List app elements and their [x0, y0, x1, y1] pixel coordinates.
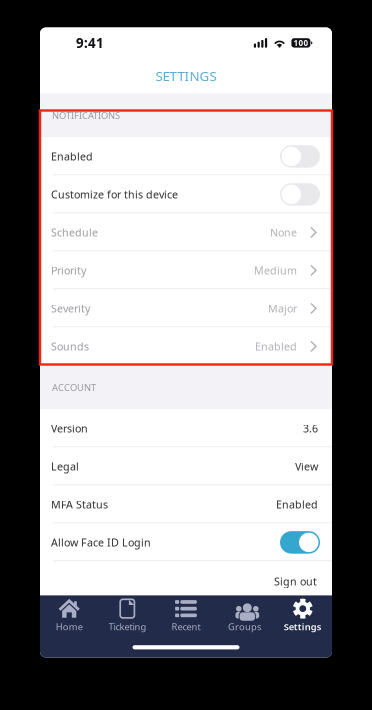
staticText: Sign out: [274, 574, 317, 588]
staticText: Major: [268, 301, 297, 315]
staticText: NOTIFICATIONS: [52, 109, 120, 122]
staticText: MFA Status: [51, 497, 108, 511]
staticText: Allow Face ID Login: [51, 535, 151, 549]
button[interactable]: Severity: [40, 289, 332, 327]
staticText: Home: [56, 620, 83, 633]
staticText: Ticketing: [109, 620, 147, 633]
staticText: Priority: [51, 263, 86, 277]
staticText: Groups: [228, 620, 261, 633]
staticText: 9:41: [76, 34, 104, 52]
staticText: Medium: [254, 263, 297, 277]
button[interactable]: Enabled: [40, 137, 332, 175]
button[interactable]: Groups: [215, 595, 274, 635]
staticText: View: [295, 459, 318, 473]
staticText: Enabled: [276, 497, 318, 511]
staticText: Severity: [51, 301, 90, 315]
staticText: Version: [51, 421, 88, 435]
button[interactable]: Allow Face ID Login: [40, 523, 332, 561]
button[interactable]: Ticketing: [98, 595, 157, 635]
button[interactable]: Sign out: [40, 561, 332, 595]
button[interactable]: Recent: [157, 595, 215, 635]
button[interactable]: Priority: [40, 251, 332, 289]
button[interactable]: Settings: [274, 595, 332, 635]
button[interactable]: Customize for this device: [40, 175, 332, 213]
staticText: ACCOUNT: [52, 381, 96, 394]
staticText: 3.6: [303, 421, 318, 435]
staticText: Schedule: [51, 225, 98, 239]
staticText: Settings: [284, 620, 322, 633]
staticText: None: [270, 225, 297, 239]
staticText: Legal: [51, 459, 79, 473]
button[interactable]: Sounds: [40, 327, 332, 365]
button[interactable]: Home: [40, 595, 98, 635]
staticText: 100: [293, 38, 308, 48]
staticText: Sounds: [51, 339, 89, 353]
staticText: SETTINGS: [155, 67, 216, 85]
staticText: Recent: [171, 620, 200, 633]
staticText: Enabled: [51, 149, 93, 163]
staticText: Enabled: [255, 339, 297, 353]
staticText: Customize for this device: [51, 187, 178, 201]
button[interactable]: Schedule: [40, 213, 332, 251]
